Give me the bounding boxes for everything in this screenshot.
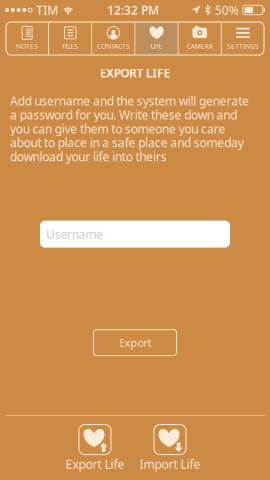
staticText: 50% [215,2,239,18]
staticText: CAMERA [187,42,213,51]
button[interactable]: LIFE [135,22,178,55]
staticText: LIFE [151,42,163,50]
staticText: Export [118,335,151,350]
button[interactable]: FILES [49,22,91,55]
button[interactable]: SETTINGS [222,22,264,55]
staticText: TIM [36,2,58,18]
staticText: 12:32 PM [107,2,159,18]
staticText: Add username and the system will generat… [10,93,249,165]
staticText: SETTINGS [227,42,259,51]
staticText: Username [46,226,103,242]
button[interactable]: CAMERA [179,22,221,55]
button[interactable]: NOTES [6,22,48,55]
staticText: NOTES [16,42,38,51]
staticText: CONTACTS [97,42,130,51]
button[interactable]: Export Life [57,424,132,472]
staticText: Import Life [139,456,200,472]
staticText: FILES [62,42,78,51]
staticText: EXPORT LIFE [99,65,170,81]
button[interactable]: Import Life [132,424,207,472]
button[interactable]: CONTACTS [92,22,134,55]
button[interactable]: Export [93,330,176,356]
staticText: Export Life [65,456,124,472]
